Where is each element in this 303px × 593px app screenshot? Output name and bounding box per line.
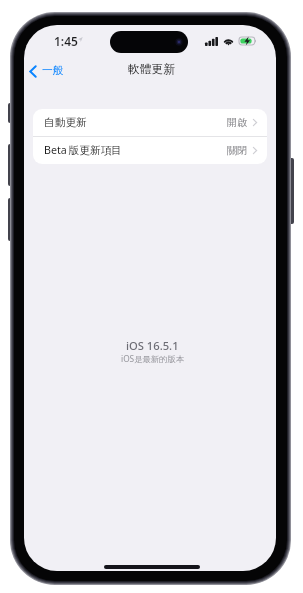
other: Cellular signal — [205, 37, 218, 46]
staticText: 關閉 — [227, 144, 248, 157]
other: Battery charging — [239, 37, 256, 45]
button[interactable]: Beta 版更新項目 — [33, 137, 267, 164]
staticText: 自動更新 — [44, 116, 87, 129]
staticText: 一般 — [42, 64, 64, 78]
staticText: Beta 版更新項目 — [44, 143, 123, 158]
staticText: 軟體更新 — [128, 62, 176, 77]
staticText: 開啟 — [227, 116, 248, 129]
staticText: iOS是最新的版本 — [121, 353, 184, 364]
button[interactable]: 一般 — [26, 61, 67, 81]
button[interactable]: 自動更新 — [33, 109, 267, 137]
staticText: 1:45 — [54, 33, 78, 49]
other: Wi-Fi — [223, 37, 234, 45]
staticText: iOS 16.5.1 — [126, 338, 179, 353]
